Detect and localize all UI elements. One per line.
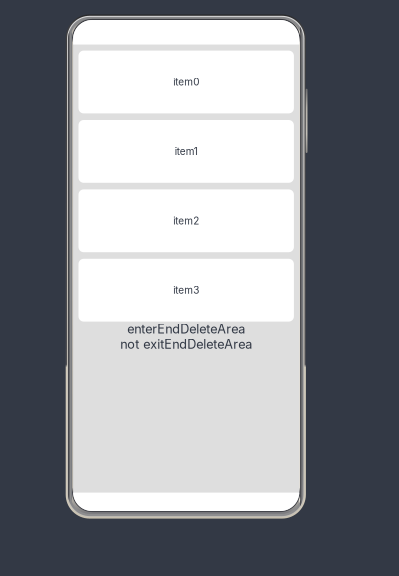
staticText: not exitEndDeleteArea (120, 337, 252, 352)
button[interactable]: item2 (78, 189, 294, 252)
staticText: item0 (173, 76, 199, 88)
button[interactable]: item1 (78, 120, 294, 183)
button[interactable]: item0 (78, 51, 294, 113)
staticText: item1 (175, 145, 198, 157)
button[interactable]: item3 (78, 259, 294, 322)
staticText: item3 (173, 284, 199, 296)
staticText: item2 (173, 215, 199, 227)
staticText: enterEndDeleteArea (127, 321, 245, 337)
